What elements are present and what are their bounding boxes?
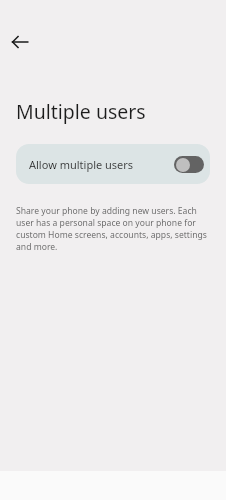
staticText: Share your phone by adding new users. Ea… [16,204,212,252]
staticText: Multiple users [16,100,146,124]
button[interactable]: Allow multiple users [16,144,210,184]
staticText: Allow multiple users [29,157,174,172]
button[interactable]: Back [4,26,36,58]
